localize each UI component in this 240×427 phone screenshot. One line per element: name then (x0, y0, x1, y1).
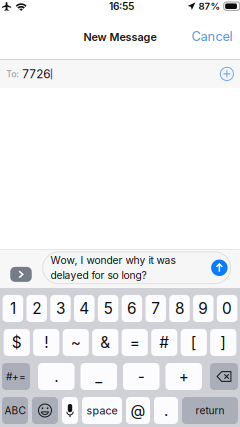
button[interactable]: ~ (63, 329, 89, 356)
staticText: ! (44, 333, 48, 352)
button[interactable]: return (182, 397, 238, 424)
staticText: ABC (4, 404, 25, 417)
button[interactable]: ] (210, 329, 236, 356)
button[interactable]: Delete (210, 363, 238, 390)
button[interactable]: + (165, 363, 202, 390)
button[interactable]: [ (181, 329, 207, 356)
button[interactable]: ABC (2, 397, 28, 424)
staticText: - (138, 367, 145, 386)
button[interactable]: 7 (145, 295, 166, 322)
staticText: 5 (104, 299, 113, 318)
button[interactable]: @ (126, 397, 150, 424)
staticText: 2 (32, 299, 41, 318)
staticText: space (86, 404, 117, 417)
button[interactable]: 8 (169, 295, 190, 322)
staticText: & (100, 333, 110, 352)
button[interactable]: 9 (193, 295, 214, 322)
staticText: 4 (79, 299, 89, 318)
staticText: . (164, 401, 168, 420)
button[interactable]: & (92, 329, 118, 356)
staticText: New Message (83, 30, 156, 44)
button[interactable]: _ (80, 363, 117, 390)
button[interactable]: Cancel (179, 20, 240, 53)
button[interactable]: 1 (3, 295, 23, 322)
staticText: 8 (175, 299, 184, 318)
staticText: @ (130, 401, 145, 420)
staticText: # (159, 333, 169, 352)
staticText: _ (95, 367, 102, 386)
button[interactable]: 2 (26, 295, 47, 322)
staticText: return (195, 404, 224, 417)
staticText: 9 (198, 299, 208, 318)
button[interactable]: - (123, 363, 159, 390)
staticText: 1 (10, 299, 16, 318)
staticText: delayed for so long? (51, 269, 147, 281)
staticText: Cancel (191, 29, 232, 44)
button[interactable]: 6 (122, 295, 142, 322)
button[interactable]: . (38, 363, 74, 390)
staticText: #+= (6, 370, 26, 383)
staticText: To: (6, 68, 19, 79)
staticText: 7726 (22, 67, 50, 81)
staticText: 16:55 (109, 0, 134, 12)
button[interactable]: = (122, 329, 148, 356)
button[interactable]: # (151, 329, 177, 356)
button[interactable]: Dictate (62, 397, 78, 424)
staticText: 87% (199, 0, 221, 12)
staticText: $ (12, 333, 22, 352)
staticText: ~ (71, 333, 81, 352)
button[interactable]: Send (211, 259, 228, 276)
staticText: = (130, 333, 140, 352)
staticText: + (179, 367, 189, 386)
staticText: 7 (151, 299, 160, 318)
button[interactable]: space (82, 397, 122, 424)
button[interactable]: 4 (74, 295, 95, 322)
button[interactable]: 3 (50, 295, 71, 322)
staticText: [ (191, 333, 197, 352)
button[interactable]: ! (33, 329, 59, 356)
button[interactable]: Add contact (215, 62, 238, 85)
staticText: 6 (127, 299, 137, 318)
staticText: 0 (222, 299, 232, 318)
button[interactable]: 5 (98, 295, 118, 322)
staticText: 3 (56, 299, 65, 318)
staticText: Wow, I wonder why it was (51, 254, 176, 266)
button[interactable]: #+= (2, 363, 30, 390)
staticText: ] (220, 333, 226, 352)
button[interactable]: Show apps (10, 267, 32, 282)
button[interactable]: $ (4, 329, 30, 356)
button[interactable]: 0 (217, 295, 237, 322)
button[interactable]: Emoji (32, 397, 58, 424)
button[interactable]: . (154, 397, 178, 424)
staticText: . (54, 367, 58, 386)
